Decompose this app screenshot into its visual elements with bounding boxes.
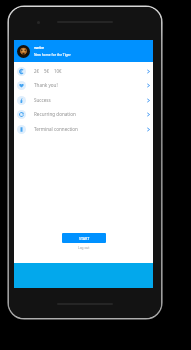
staticText: Thank you! (34, 82, 58, 88)
other: Open (146, 69, 151, 74)
staticText: 10€ (54, 68, 62, 74)
staticText: New home for the Tiger (34, 52, 71, 56)
other: Open (146, 127, 151, 132)
button[interactable]: Log out (78, 246, 90, 250)
button[interactable]: Recurring donation (14, 107, 153, 121)
staticText: Recurring donation (34, 111, 76, 117)
button[interactable]: Terminal connection (14, 122, 153, 136)
button[interactable]: START (62, 233, 106, 243)
staticText: START (79, 236, 90, 241)
staticText: 5€ (44, 68, 50, 74)
other: Open (146, 98, 151, 103)
other: Open (146, 83, 151, 88)
staticText: martinr (34, 46, 44, 50)
staticText: 2€ (34, 68, 40, 74)
other: Open (146, 112, 151, 117)
staticText: Log out (78, 246, 90, 250)
button[interactable]: martinr (14, 40, 153, 62)
button[interactable]: 2€ (14, 64, 153, 78)
button[interactable]: Success (14, 93, 153, 107)
button[interactable]: Thank you! (14, 78, 153, 92)
staticText: Success (34, 97, 51, 103)
staticText: Terminal connection (34, 126, 78, 132)
